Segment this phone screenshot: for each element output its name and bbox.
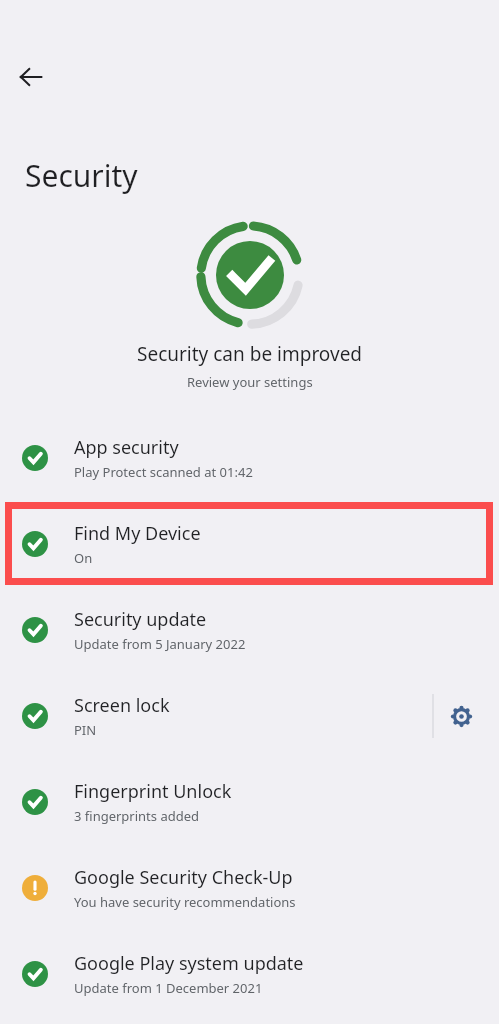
staticText: Review your settings [187, 373, 313, 391]
staticText: Google Security Check-Up [74, 865, 293, 890]
button[interactable]: App security [0, 415, 499, 501]
staticText: On [74, 549, 93, 567]
staticText: Update from 5 January 2022 [74, 635, 246, 653]
staticText: PIN [74, 721, 97, 739]
button[interactable]: Google Play system update [0, 931, 499, 1017]
staticText: Security [25, 155, 138, 196]
button[interactable]: Screen lock settings [439, 694, 483, 738]
button[interactable]: Back [10, 56, 52, 98]
button[interactable]: Security update [0, 587, 499, 673]
staticText: Find My Device [74, 521, 201, 546]
button[interactable]: Google Security Check-Up [0, 845, 499, 931]
staticText: 3 fingerprints added [74, 807, 200, 825]
staticText: App security [74, 435, 179, 460]
staticText: Security update [74, 607, 207, 632]
button[interactable]: Find My Device [0, 501, 499, 587]
button[interactable]: Fingerprint Unlock [0, 759, 499, 845]
staticText: Play Protect scanned at 01:42 [74, 463, 253, 481]
staticText: Google Play system update [74, 951, 304, 976]
staticText: Update from 1 December 2021 [74, 979, 263, 997]
button[interactable]: Screen lock [0, 673, 499, 759]
staticText: Fingerprint Unlock [74, 779, 232, 804]
staticText: You have security recommendations [74, 893, 296, 911]
staticText: Security can be improved [137, 341, 363, 367]
staticText: Screen lock [74, 693, 170, 718]
